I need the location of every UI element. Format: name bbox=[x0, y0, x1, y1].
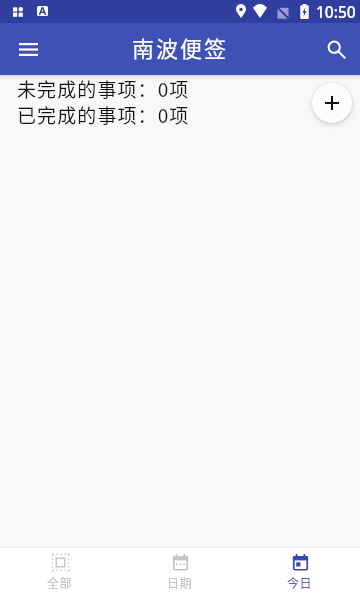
button[interactable]: 日期 bbox=[120, 548, 240, 600]
staticText: 未完成的事项：0项 bbox=[17, 75, 190, 101]
staticText: 南波便签 bbox=[132, 31, 229, 63]
button[interactable]: Add note bbox=[312, 83, 352, 123]
button[interactable]: Navigation menu bbox=[6, 27, 50, 71]
button[interactable]: 今日 bbox=[240, 548, 360, 600]
button[interactable]: Search bbox=[314, 27, 358, 71]
button[interactable]: 全部 bbox=[0, 548, 120, 600]
staticText: 全部 bbox=[47, 574, 73, 591]
staticText: 日期 bbox=[167, 574, 193, 591]
staticText: 10:50 bbox=[316, 1, 356, 22]
staticText: 已完成的事项：0项 bbox=[17, 101, 190, 127]
staticText: 今日 bbox=[287, 574, 313, 591]
